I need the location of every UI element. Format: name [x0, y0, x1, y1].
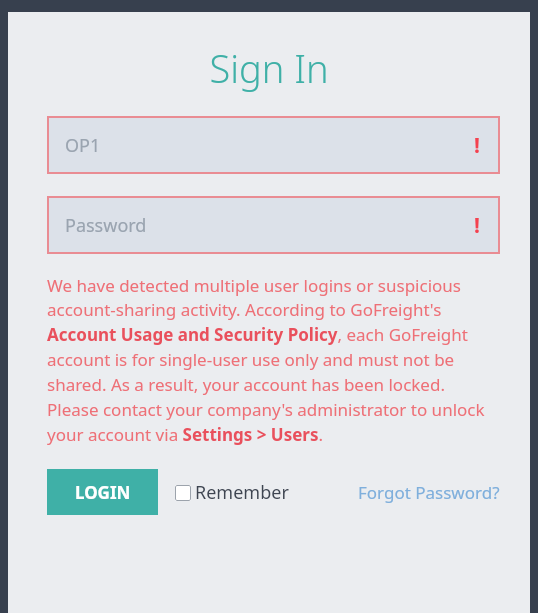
- button[interactable]: OP1: [47, 116, 500, 174]
- button[interactable]: Password: [47, 196, 500, 254]
- staticText: !: [474, 211, 480, 240]
- staticText: We have detected multiple user logins or…: [47, 274, 500, 446]
- staticText: OP1: [65, 133, 101, 158]
- button[interactable]: LOGIN: [47, 469, 158, 515]
- other: Validation error: [474, 131, 480, 160]
- button[interactable]: Forgot Password?: [358, 481, 500, 504]
- staticText: Sign In: [8, 42, 530, 94]
- staticText: LOGIN: [75, 481, 131, 504]
- button[interactable]: Remember: [175, 480, 289, 505]
- staticText: !: [474, 131, 480, 160]
- other: Validation error: [474, 211, 480, 240]
- staticText: Password: [65, 213, 147, 238]
- staticText: Remember: [195, 480, 289, 505]
